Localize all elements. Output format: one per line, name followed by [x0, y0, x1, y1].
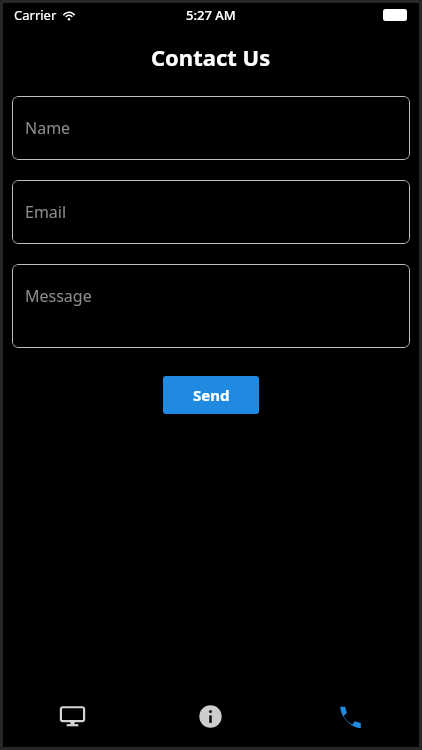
staticText: Send: [193, 385, 230, 405]
staticText: Email: [25, 201, 67, 223]
staticText: Carrier: [14, 6, 57, 24]
staticText: 5:27 AM: [186, 6, 236, 24]
staticText: Name: [25, 117, 71, 139]
staticText: Message: [25, 285, 92, 307]
button[interactable]: Screen mirroring: [3, 685, 141, 747]
button[interactable]: Call: [280, 685, 419, 747]
staticText: Contact Us: [151, 42, 271, 72]
button[interactable]: Email: [12, 180, 410, 244]
button[interactable]: Information: [141, 685, 280, 747]
button[interactable]: Send: [163, 376, 259, 414]
button[interactable]: Message: [12, 264, 410, 348]
button[interactable]: Name: [12, 96, 410, 160]
